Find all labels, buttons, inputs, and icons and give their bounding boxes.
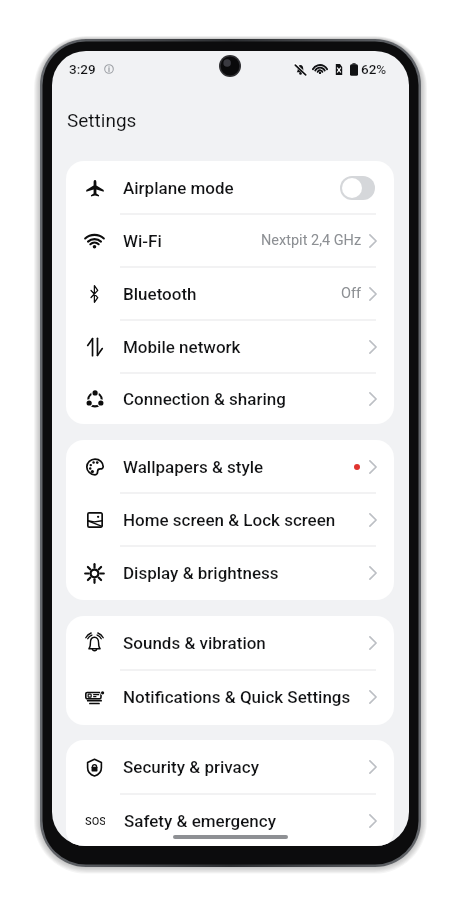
other: Silent mode <box>294 63 307 76</box>
staticText: Home screen & Lock screen <box>123 510 336 530</box>
staticText: Off <box>341 285 362 302</box>
other: Wi-Fi <box>312 63 328 76</box>
staticText: Airplane mode <box>123 178 234 198</box>
button[interactable]: Display & brightness <box>66 546 394 599</box>
staticText: Bluetooth <box>123 284 197 304</box>
staticText: Nextpit 2,4 GHz <box>261 232 362 249</box>
other: No SIM <box>334 63 344 76</box>
staticText: Mobile network <box>123 337 241 357</box>
staticText: SOS <box>85 815 105 828</box>
staticText: Sounds & vibration <box>123 633 266 653</box>
button[interactable]: Mobile network <box>66 320 394 373</box>
button[interactable]: Connection & sharing <box>66 373 394 424</box>
button[interactable]: Wi-Fi <box>66 214 394 267</box>
staticText: 3:29 <box>69 61 96 77</box>
button[interactable]: Security & privacy <box>66 740 394 794</box>
staticText: Connection & sharing <box>123 389 286 409</box>
staticText: Notifications & Quick Settings <box>123 687 351 707</box>
staticText: Display & brightness <box>123 563 279 583</box>
button[interactable]: Toggle airplane mode <box>340 176 375 200</box>
staticText: 62% <box>361 61 387 77</box>
staticText: Security & privacy <box>123 757 259 777</box>
button[interactable]: Sounds & vibration <box>66 616 394 670</box>
button[interactable]: Notifications & Quick Settings <box>66 670 394 724</box>
staticText: Wallpapers & style <box>123 457 264 477</box>
staticText: Wi-Fi <box>123 231 162 251</box>
other: Battery <box>350 63 358 76</box>
button[interactable]: Wallpapers & style <box>66 440 394 493</box>
staticText: Settings <box>67 109 137 131</box>
button[interactable]: Bluetooth <box>66 267 394 320</box>
button[interactable]: SOS <box>66 794 394 846</box>
button[interactable]: Airplane mode <box>66 161 394 214</box>
button[interactable]: Home screen & Lock screen <box>66 493 394 546</box>
staticText: Safety & emergency <box>124 811 276 831</box>
